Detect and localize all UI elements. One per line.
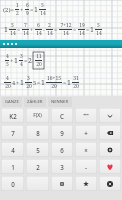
staticText: 4: [20, 61, 23, 68]
button[interactable]: 2: [26, 159, 49, 174]
staticText: 2: [48, 22, 51, 29]
staticText: 5: [6, 61, 9, 68]
staticText: =: [30, 6, 34, 14]
button[interactable]: +: [75, 125, 97, 140]
button[interactable]: 9: [51, 125, 73, 140]
button[interactable]: 7: [1, 125, 24, 140]
staticText: K2: [9, 112, 17, 120]
button[interactable]: 6: [51, 142, 73, 157]
staticText: F(X): [33, 112, 42, 119]
staticText: 1: [34, 5, 38, 14]
staticText: 8: [36, 129, 40, 137]
button[interactable]: Star: [75, 176, 97, 191]
staticText: 1: [16, 2, 19, 9]
staticText: 14: [36, 30, 42, 37]
staticText: 6: [37, 22, 40, 29]
staticText: 6: [26, 2, 29, 9]
button[interactable]: ×: [75, 142, 97, 157]
staticText: 14: [96, 30, 102, 37]
staticText: 2: [28, 56, 32, 65]
button[interactable]: [26, 176, 49, 191]
button[interactable]: F(X): [26, 108, 49, 123]
staticText: 5: [36, 146, 40, 154]
button[interactable]: Backspace: [99, 125, 121, 140]
staticText: 9: [26, 10, 29, 17]
button[interactable]: 8: [26, 125, 49, 140]
staticText: -: [43, 26, 45, 34]
button[interactable]: Settings: [99, 142, 121, 157]
staticText: 7: [24, 22, 27, 29]
button[interactable]: 5: [26, 142, 49, 157]
button[interactable]: K2: [1, 108, 24, 123]
staticText: ZÄHLER: [27, 99, 43, 105]
staticText: 20: [73, 83, 79, 90]
staticText: +: [10, 57, 14, 65]
staticText: -: [85, 163, 87, 171]
staticText: 14: [23, 30, 29, 37]
staticText: 16+15: [47, 75, 61, 82]
button[interactable]: Hide keyboard: [99, 108, 121, 123]
staticText: 14: [40, 10, 46, 17]
button[interactable]: -: [75, 159, 97, 174]
staticText: =: [63, 79, 67, 87]
staticText: =: [17, 26, 21, 34]
staticText: 1: [67, 78, 71, 87]
staticText: 7: [11, 129, 15, 137]
staticText: NENNER: [51, 99, 69, 105]
staticText: (2)=: [3, 6, 14, 14]
staticText: +: [30, 26, 34, 34]
staticText: 5: [41, 2, 44, 9]
button[interactable]: ZÄHLER: [24, 97, 46, 107]
staticText: +: [20, 6, 24, 14]
staticText: 1: [4, 25, 8, 34]
button[interactable]: GANZE: [2, 97, 22, 107]
button[interactable]: More: [75, 108, 97, 123]
staticText: 14: [79, 30, 85, 37]
button[interactable]: Favourite: [99, 159, 121, 174]
staticText: 1: [11, 163, 15, 171]
staticText: =: [24, 57, 28, 65]
staticText: 3: [20, 53, 23, 60]
staticText: 19: [79, 22, 85, 29]
button[interactable]: 4: [1, 142, 24, 157]
staticText: 4: [11, 146, 15, 154]
staticText: 5: [33, 79, 37, 87]
staticText: ×: [84, 146, 88, 154]
button[interactable]: Close: [99, 176, 121, 191]
staticText: 0: [11, 180, 15, 188]
staticText: 2: [36, 163, 40, 171]
staticText: 5: [11, 22, 14, 29]
staticText: 1: [20, 78, 24, 87]
staticText: 4: [6, 75, 9, 82]
staticText: 31: [73, 75, 79, 82]
staticText: 1: [14, 56, 18, 65]
button[interactable]: NENNER: [48, 97, 72, 107]
staticText: 1: [90, 25, 94, 34]
staticText: 14: [47, 30, 53, 37]
staticText: 4: [12, 79, 16, 87]
staticText: 2: [16, 10, 19, 17]
staticText: 20: [36, 61, 42, 68]
staticText: +: [84, 129, 88, 137]
button[interactable]: Decimal point: [51, 176, 73, 191]
button[interactable]: 3: [51, 159, 73, 174]
staticText: =: [73, 26, 77, 34]
staticText: 20: [51, 83, 57, 90]
staticText: =: [37, 79, 41, 87]
staticText: 20: [5, 83, 11, 90]
staticText: C: [60, 112, 64, 120]
staticText: 14: [63, 30, 69, 37]
staticText: 3: [27, 75, 30, 82]
button[interactable]: C: [51, 108, 73, 123]
staticText: 1: [41, 78, 45, 87]
staticText: =: [54, 26, 58, 34]
staticText: GANZE: [5, 99, 19, 105]
staticText: •••: [83, 112, 89, 119]
staticText: 7+12: [60, 22, 72, 29]
button[interactable]: 1: [1, 159, 24, 174]
button[interactable]: 0: [1, 176, 24, 191]
staticText: +: [16, 79, 20, 87]
staticText: 5: [97, 22, 100, 29]
staticText: 3: [60, 163, 64, 171]
staticText: 14: [10, 30, 16, 37]
